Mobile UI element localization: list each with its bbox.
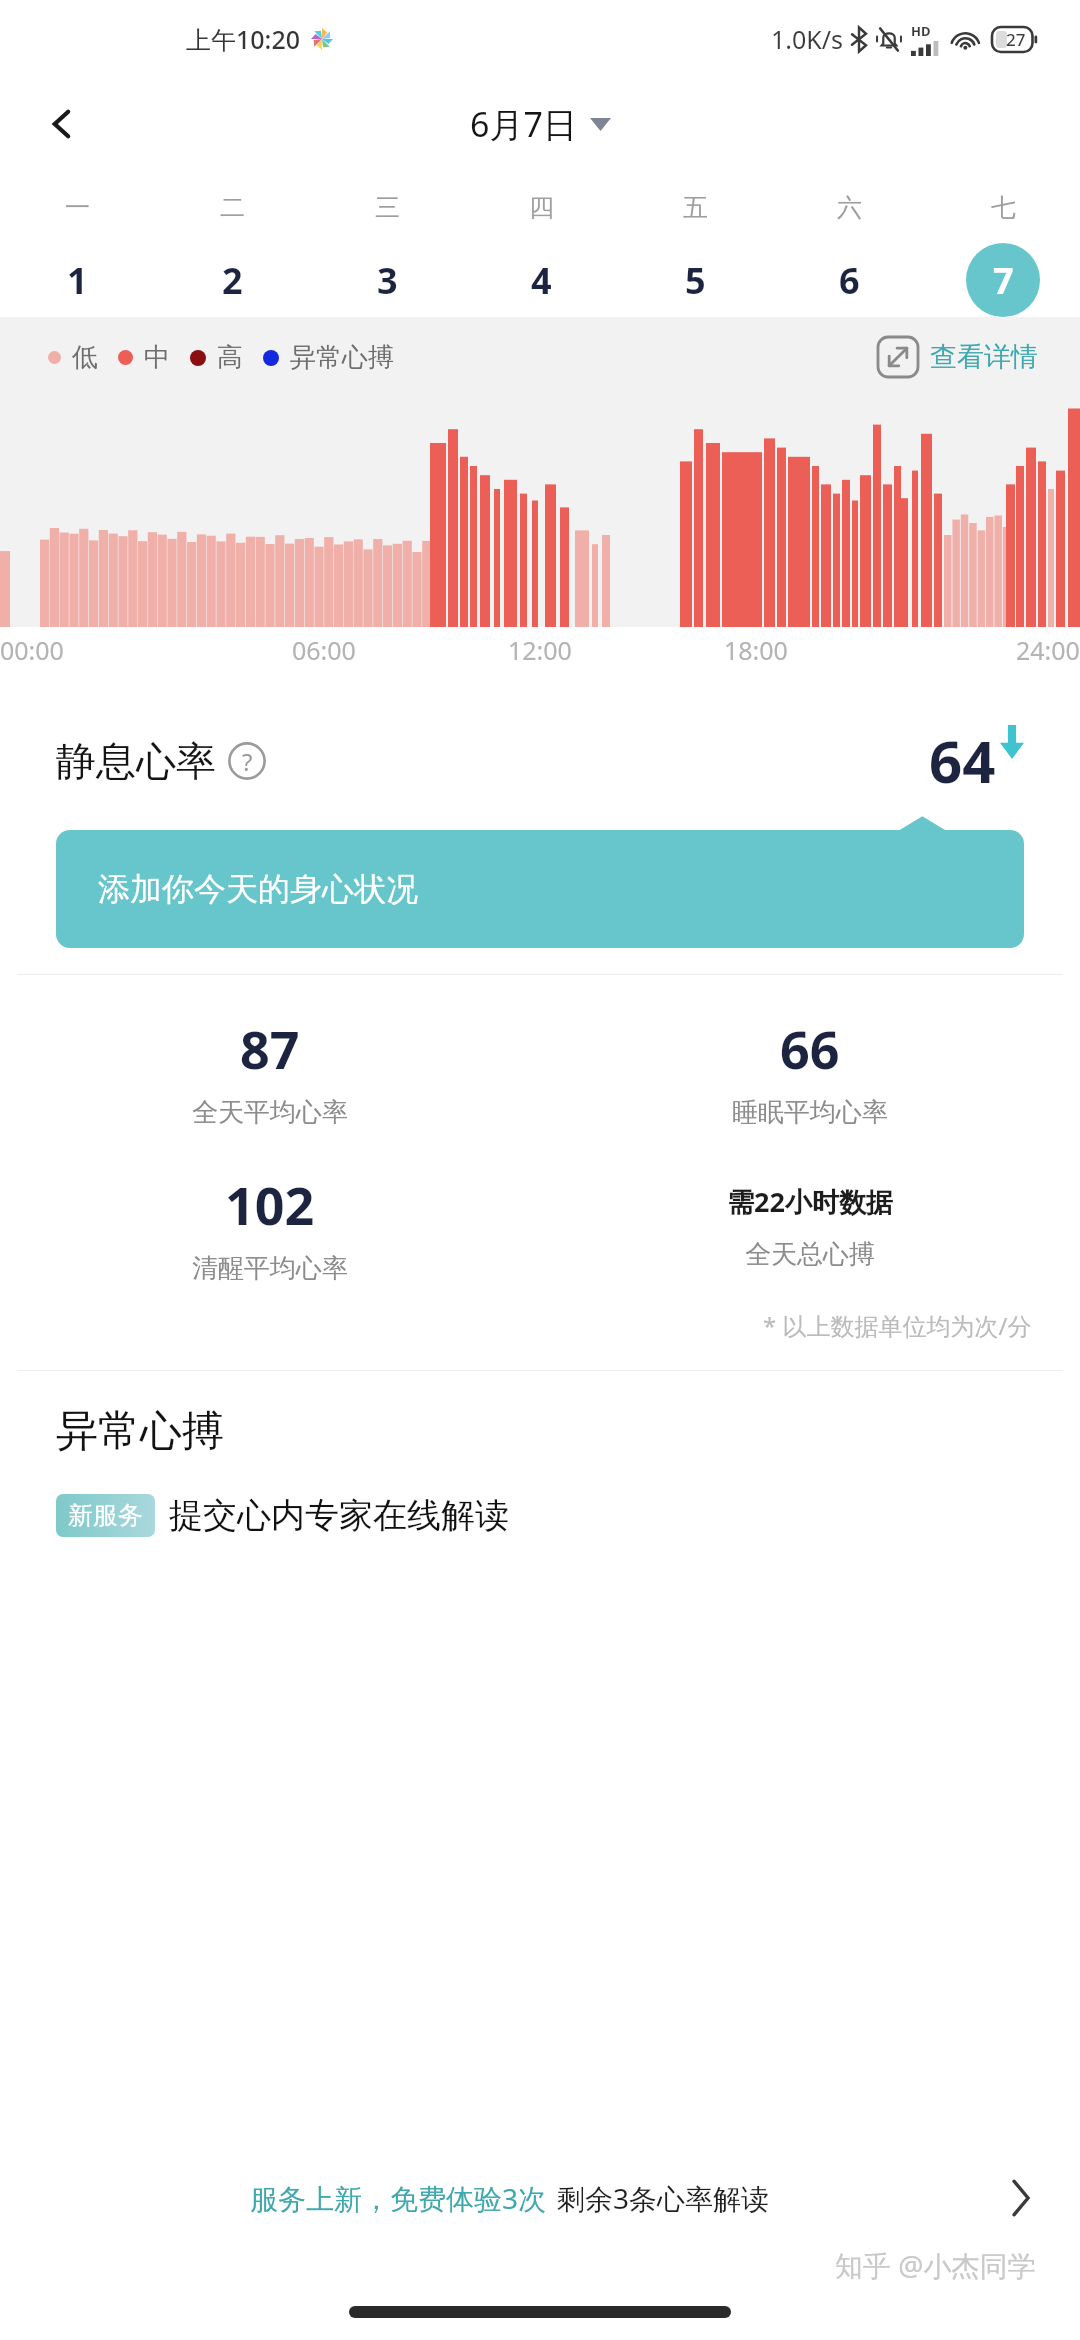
staticText: 00:00: [0, 633, 64, 667]
staticText: 睡眠平均心率: [732, 1096, 888, 1129]
staticText: 87: [240, 1013, 300, 1084]
staticText: ?: [242, 745, 253, 778]
staticText: 24:00: [1016, 633, 1080, 667]
staticText: 3: [377, 256, 398, 305]
staticText: 102: [225, 1169, 315, 1240]
staticText: 新服务: [68, 1500, 143, 1531]
button[interactable]: 1: [0, 243, 155, 317]
staticText: 清醒平均心率: [192, 1252, 348, 1285]
button[interactable]: 7: [926, 243, 1080, 317]
button[interactable]: 5: [618, 243, 772, 317]
button[interactable]: 4: [464, 243, 618, 317]
staticText: 全天总心搏: [745, 1238, 875, 1271]
staticText: 64: [929, 721, 996, 800]
button[interactable]: 服务上新，免费体验3次: [250, 2150, 1032, 2246]
staticText: 2: [222, 256, 243, 305]
staticText: 提交心内专家在线解读: [169, 1494, 509, 1537]
staticText: 06:00: [292, 633, 356, 667]
staticText: 知乎 @小杰同学: [835, 2246, 1036, 2284]
staticText: 需22小时数据: [727, 1183, 893, 1220]
button[interactable]: 6: [772, 243, 926, 317]
staticText: 静息心率: [56, 736, 216, 786]
button[interactable]: Back: [30, 92, 94, 156]
staticText: 全天平均心率: [192, 1096, 348, 1129]
staticText: 1: [67, 256, 88, 305]
staticText: 添加你今天的身心状况: [98, 869, 418, 909]
staticText: * 以上数据单位均为次/分: [763, 1309, 1032, 1342]
staticText: 五: [683, 192, 708, 223]
button[interactable]: 添加你今天的身心状况: [56, 830, 1024, 948]
staticText: HD: [911, 22, 931, 40]
staticText: 二: [220, 192, 245, 223]
staticText: 剩余3条心率解读: [557, 2179, 770, 2217]
staticText: 异常心搏: [56, 1405, 224, 1458]
button[interactable]: Help: [228, 742, 266, 780]
staticText: 查看详情: [930, 340, 1038, 374]
staticText: 异常心搏: [290, 341, 394, 374]
button[interactable]: 6月7日: [470, 101, 611, 147]
staticText: 18:00: [724, 633, 788, 667]
staticText: 1.0K/s: [771, 22, 844, 56]
button[interactable]: 查看详情: [878, 337, 1038, 377]
button[interactable]: 新服务: [56, 1494, 509, 1537]
staticText: 5: [685, 256, 706, 305]
staticText: 四: [529, 192, 554, 223]
button[interactable]: 3: [310, 243, 464, 317]
staticText: 上午10:20: [186, 22, 301, 56]
staticText: 7: [993, 256, 1014, 305]
staticText: 一: [65, 192, 90, 223]
staticText: 6: [839, 256, 860, 305]
staticText: 三: [375, 192, 400, 223]
staticText: 六: [837, 192, 862, 223]
staticText: 66: [780, 1013, 840, 1084]
staticText: 高: [217, 341, 243, 374]
staticText: 27: [1006, 28, 1026, 51]
staticText: 服务上新，免费体验3次: [250, 2179, 547, 2217]
staticText: 低: [72, 341, 98, 374]
staticText: 6月7日: [470, 101, 577, 147]
staticText: 12:00: [508, 633, 572, 667]
staticText: 七: [991, 192, 1016, 223]
button[interactable]: 2: [155, 243, 310, 317]
staticText: 中: [144, 341, 170, 374]
staticText: 4: [531, 256, 552, 305]
